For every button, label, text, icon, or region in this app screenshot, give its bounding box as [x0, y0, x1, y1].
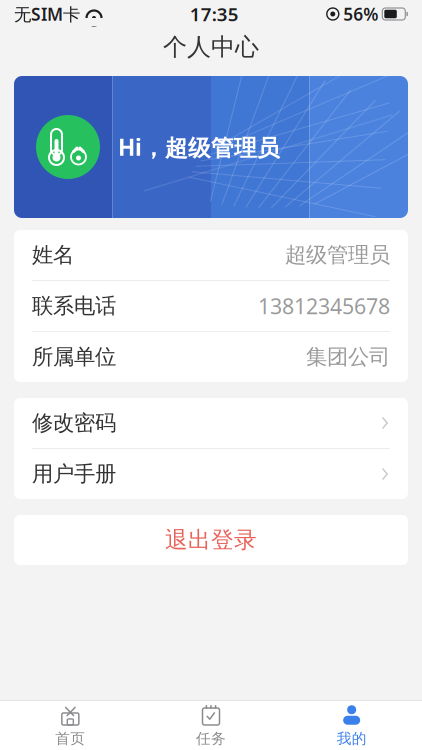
staticText: 首页: [55, 729, 85, 747]
staticText: 56%: [343, 2, 378, 25]
staticText: 退出登录: [165, 526, 257, 554]
staticText: 姓名: [32, 242, 74, 268]
staticText: 修改密码: [32, 410, 116, 436]
staticText: 集团公司: [306, 344, 390, 370]
button[interactable]: 首页: [0, 701, 141, 750]
staticText: 所属单位: [32, 344, 116, 370]
button[interactable]: 修改密码: [14, 398, 408, 448]
staticText: 联系电话: [32, 293, 116, 319]
staticText: 个人中心: [163, 32, 259, 62]
staticText: 任务: [196, 729, 226, 747]
staticText: 13812345678: [258, 292, 390, 320]
button[interactable]: 任务: [141, 701, 281, 750]
staticText: 用户手册: [32, 461, 116, 487]
button[interactable]: 退出登录: [14, 515, 408, 565]
button[interactable]: 用户手册: [14, 449, 408, 499]
staticText: 我的: [337, 729, 367, 747]
staticText: Hi，超级管理员: [118, 132, 280, 162]
staticText: 无SIM卡: [14, 2, 80, 25]
button[interactable]: 我的: [281, 701, 422, 750]
staticText: 超级管理员: [285, 242, 390, 268]
staticText: 17:35: [190, 2, 239, 26]
